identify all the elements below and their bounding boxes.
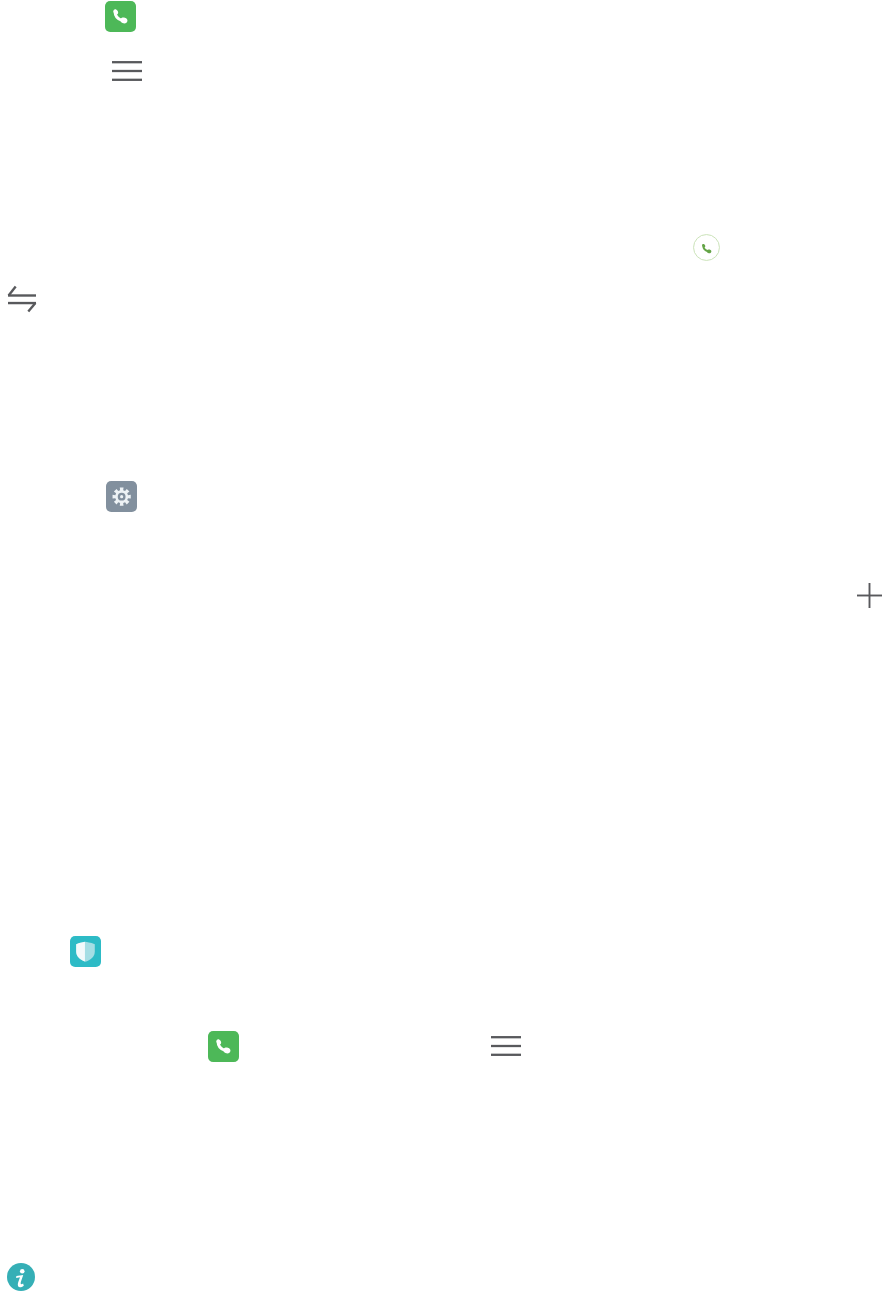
button[interactable]: Settings: [106, 481, 137, 512]
button[interactable]: Menu: [491, 1036, 521, 1056]
button[interactable]: Navigation menu: [112, 61, 142, 81]
button[interactable]: Phone: [105, 1, 136, 32]
button[interactable]: Info: [7, 1263, 35, 1291]
button[interactable]: Phone: [208, 1031, 239, 1062]
button[interactable]: Security: [70, 936, 101, 967]
button[interactable]: Swap: [8, 285, 36, 313]
button[interactable]: Call: [693, 234, 720, 261]
button[interactable]: Add: [857, 583, 882, 608]
